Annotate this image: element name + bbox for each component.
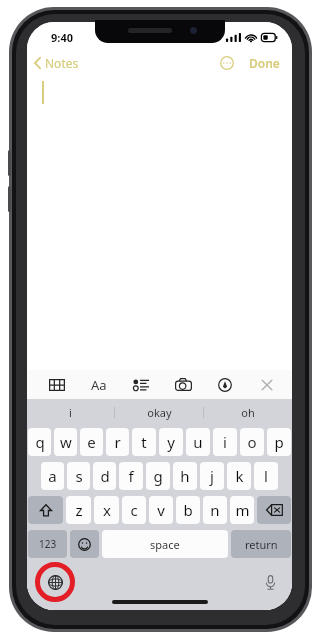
button[interactable]: Checklist xyxy=(120,370,162,399)
button[interactable]: q xyxy=(28,428,51,456)
staticText: r xyxy=(114,432,121,452)
staticText: return xyxy=(245,537,278,552)
button[interactable]: More options xyxy=(216,52,238,74)
staticText: i xyxy=(223,432,227,452)
button[interactable]: space xyxy=(102,530,228,558)
button[interactable]: v xyxy=(149,496,173,524)
button[interactable]: o xyxy=(240,428,264,456)
button[interactable]: s xyxy=(67,462,90,490)
staticText: x xyxy=(103,500,111,520)
staticText: u xyxy=(193,432,203,452)
button[interactable]: z xyxy=(66,496,91,524)
button[interactable]: x xyxy=(94,496,119,524)
button[interactable]: i xyxy=(213,428,237,456)
button[interactable]: Emoji xyxy=(70,530,99,558)
button[interactable]: oh xyxy=(204,399,292,425)
button[interactable]: Close keyboard xyxy=(246,370,288,399)
staticText: o xyxy=(247,432,257,452)
staticText: d xyxy=(100,466,110,486)
button[interactable]: m xyxy=(230,496,254,524)
button[interactable]: Notes xyxy=(27,51,89,75)
button[interactable]: Done xyxy=(242,51,287,75)
staticText: f xyxy=(128,466,134,486)
button[interactable]: p xyxy=(267,428,291,456)
staticText: z xyxy=(75,500,83,520)
button[interactable]: return xyxy=(231,530,291,558)
button[interactable]: e xyxy=(80,428,103,456)
button[interactable]: t xyxy=(132,428,156,456)
staticText: w xyxy=(60,432,72,452)
staticText: l xyxy=(264,466,268,486)
staticText: e xyxy=(87,432,96,452)
button[interactable]: Dictate xyxy=(258,570,282,594)
button[interactable]: h xyxy=(173,462,197,490)
staticText: i xyxy=(69,405,72,420)
button[interactable]: w xyxy=(54,428,77,456)
staticText: Notes xyxy=(45,55,79,71)
button[interactable]: Camera xyxy=(162,370,204,399)
staticText: Aa xyxy=(91,376,107,394)
button[interactable]: 123 xyxy=(28,530,67,558)
button[interactable]: okay xyxy=(115,399,203,425)
staticText: s xyxy=(75,466,83,486)
staticText: q xyxy=(35,432,45,452)
staticText: b xyxy=(183,500,193,520)
staticText: g xyxy=(153,466,163,486)
button[interactable]: f xyxy=(119,462,143,490)
staticText: y xyxy=(167,432,175,452)
staticText: space xyxy=(150,537,180,552)
button[interactable]: Backspace xyxy=(257,496,291,524)
button[interactable]: d xyxy=(93,462,116,490)
staticText: k xyxy=(235,466,244,486)
staticText: oh xyxy=(241,405,255,420)
button[interactable]: Shift xyxy=(28,496,63,524)
button[interactable]: y xyxy=(159,428,183,456)
button[interactable]: l xyxy=(254,462,278,490)
button[interactable]: k xyxy=(227,462,251,490)
staticText: n xyxy=(210,500,220,520)
button[interactable]: b xyxy=(176,496,200,524)
button[interactable]: Switch keyboard language xyxy=(35,562,75,602)
staticText: 123 xyxy=(39,537,57,551)
staticText: h xyxy=(180,466,190,486)
staticText: v xyxy=(157,500,165,520)
button[interactable]: j xyxy=(200,462,224,490)
button[interactable]: Markup xyxy=(204,370,246,399)
staticText: okay xyxy=(147,405,172,420)
button[interactable]: Table xyxy=(35,370,78,399)
button[interactable]: Text format xyxy=(78,370,120,399)
button[interactable]: i xyxy=(27,399,114,425)
staticText: t xyxy=(141,432,147,452)
staticText: a xyxy=(48,466,57,486)
staticText: p xyxy=(274,432,284,452)
button[interactable]: u xyxy=(186,428,210,456)
button[interactable]: n xyxy=(203,496,227,524)
button[interactable]: a xyxy=(41,462,64,490)
staticText: Done xyxy=(249,55,280,71)
button[interactable]: r xyxy=(106,428,129,456)
staticText: m xyxy=(235,500,250,520)
staticText: 9:40 xyxy=(51,30,73,45)
button[interactable]: c xyxy=(122,496,146,524)
staticText: j xyxy=(210,466,214,486)
staticText: c xyxy=(130,500,138,520)
button[interactable]: g xyxy=(146,462,170,490)
